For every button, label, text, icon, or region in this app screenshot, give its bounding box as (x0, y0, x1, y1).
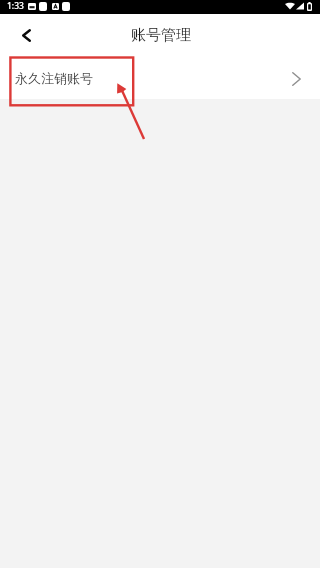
staticText: 1:33 (7, 0, 24, 12)
button[interactable]: Back (13, 22, 39, 48)
staticText: 永久注销账号 (15, 70, 93, 86)
staticText: 账号管理 (131, 26, 191, 45)
button[interactable]: 永久注销账号 (0, 58, 320, 99)
